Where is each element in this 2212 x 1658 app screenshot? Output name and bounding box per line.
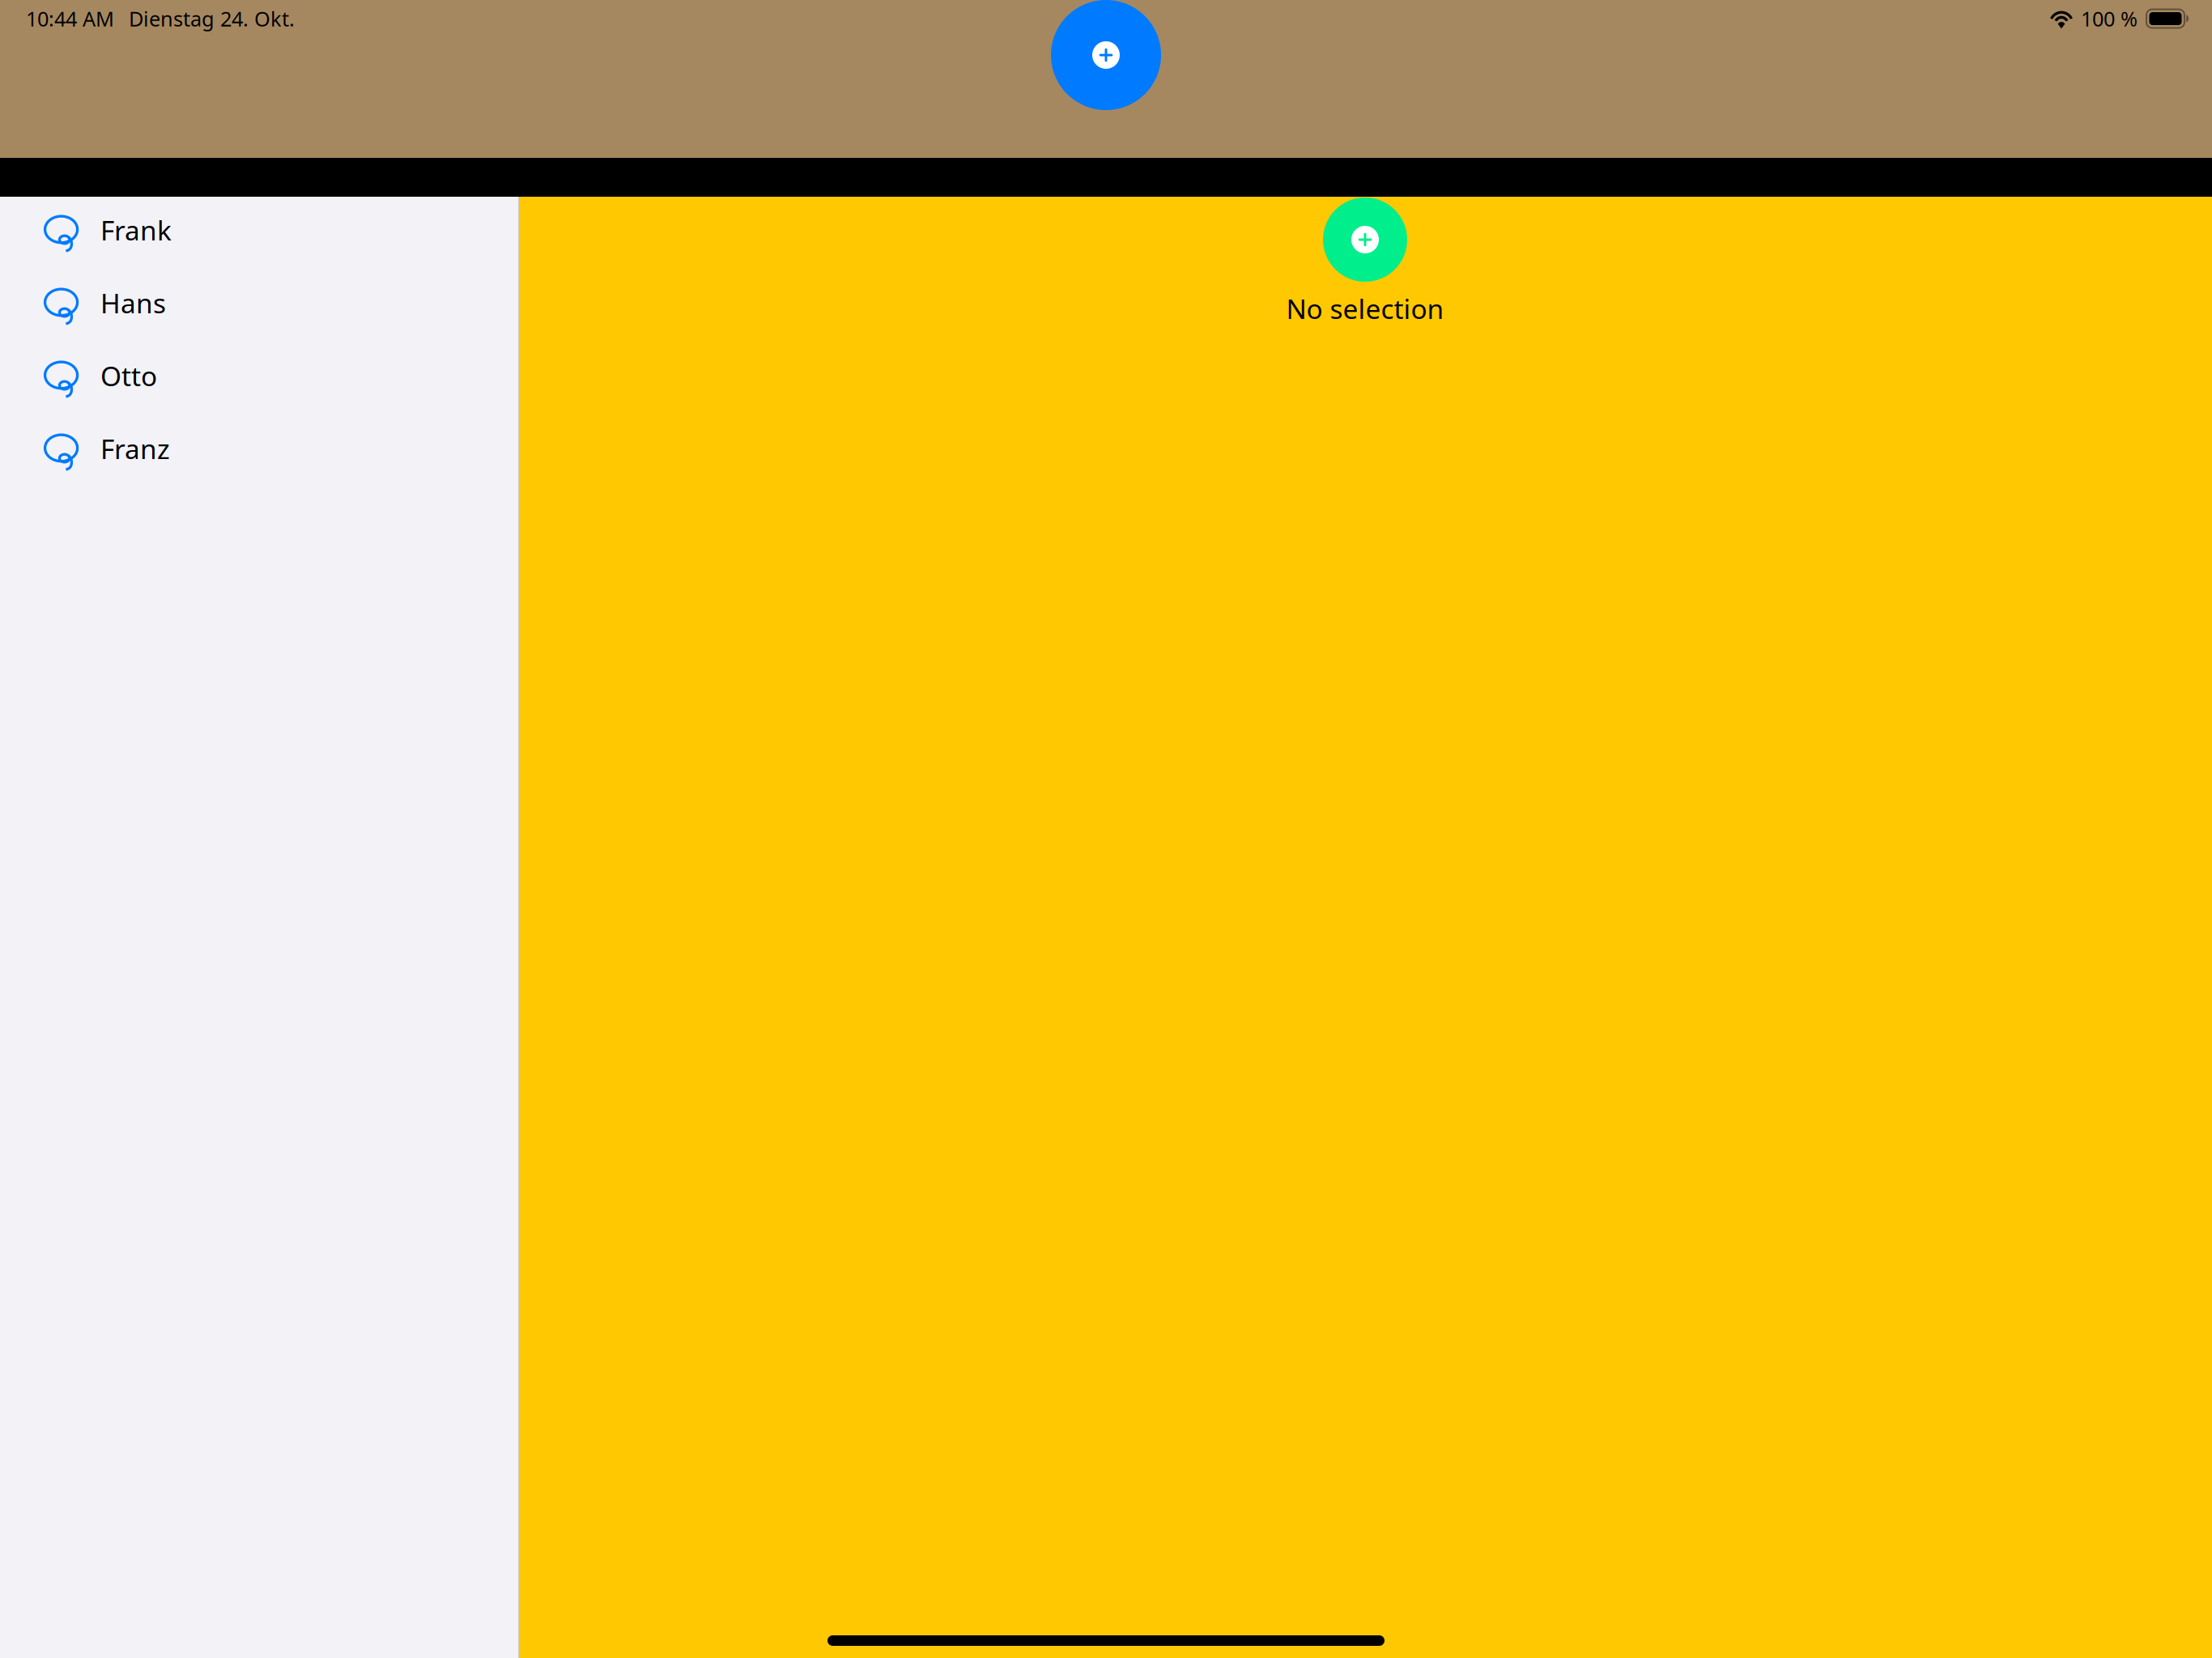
staticText: 10:44 AM [26, 5, 114, 32]
button[interactable]: Otto [0, 342, 518, 415]
staticText: 100 % [2081, 5, 2138, 32]
staticText: Frank [100, 212, 172, 248]
staticText: No selection [1286, 291, 1444, 326]
staticText: Dienstag 24. Okt. [129, 5, 295, 32]
button[interactable]: New conversation [1323, 198, 1407, 282]
staticText: Hans [100, 285, 166, 321]
button[interactable]: New conversation [1051, 0, 1161, 110]
button[interactable]: Franz [0, 415, 518, 488]
staticText: Franz [100, 431, 170, 467]
staticText: Otto [100, 358, 157, 394]
button[interactable]: Hans [0, 270, 518, 342]
button[interactable]: Frank [0, 197, 518, 270]
